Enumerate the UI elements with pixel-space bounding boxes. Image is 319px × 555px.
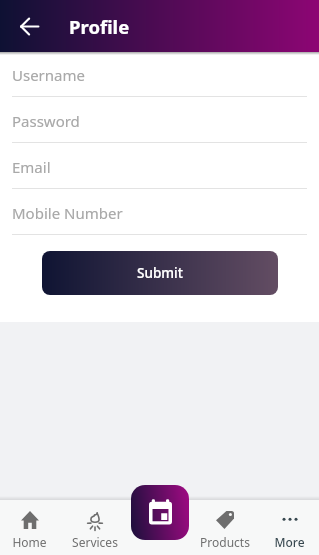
button[interactable]: More — [257, 500, 319, 550]
staticText: Products — [200, 534, 250, 550]
button[interactable]: Submit — [42, 251, 278, 295]
staticText: Password — [12, 111, 80, 131]
staticText: Email — [12, 157, 51, 177]
staticText: Home — [12, 534, 47, 550]
button[interactable]: Products — [192, 500, 257, 550]
button[interactable]: Home — [0, 500, 62, 550]
staticText: Submit — [137, 264, 183, 282]
staticText: Profile — [69, 14, 130, 39]
button[interactable]: Events — [131, 485, 189, 540]
button[interactable]: Back — [11, 8, 47, 44]
button[interactable]: Services — [62, 500, 127, 550]
staticText: Services — [72, 534, 118, 550]
staticText: More — [274, 534, 305, 550]
staticText: Mobile Number — [12, 203, 123, 223]
staticText: Username — [12, 65, 85, 85]
